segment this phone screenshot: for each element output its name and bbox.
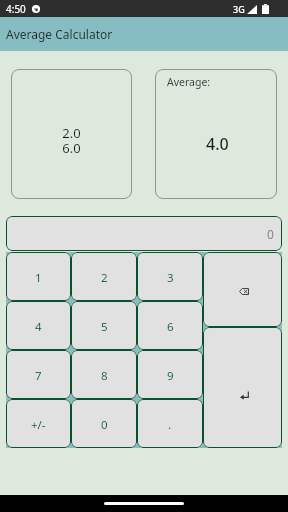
button[interactable]: 2 — [71, 252, 137, 301]
button[interactable]: 4 — [6, 301, 71, 350]
staticText: 6 — [167, 319, 174, 335]
staticText: 9 — [167, 368, 174, 384]
staticText: 2.0 6.0 — [62, 124, 81, 157]
button[interactable]: 6 — [137, 301, 203, 350]
button[interactable]: 3 — [137, 252, 203, 301]
button[interactable]: 7 — [6, 350, 71, 399]
staticText: 4 — [35, 319, 42, 335]
button[interactable]: . — [137, 399, 203, 448]
staticText: 1 — [35, 270, 42, 286]
staticText: Average Calculator — [6, 26, 113, 42]
button[interactable]: Backspace — [203, 252, 282, 327]
staticText: 4.0 — [206, 133, 229, 155]
button[interactable]: 9 — [137, 350, 203, 399]
staticText: +/- — [31, 417, 46, 433]
staticText: 0 — [267, 226, 274, 242]
button[interactable]: Enter — [203, 327, 282, 448]
button[interactable]: 5 — [71, 301, 137, 350]
button[interactable]: 2.0 6.0 — [11, 69, 132, 199]
button[interactable]: Average: — [155, 69, 277, 199]
staticText: 4:50 — [6, 2, 26, 16]
button[interactable]: 8 — [71, 350, 137, 399]
staticText: 0 — [101, 417, 108, 433]
staticText: 8 — [101, 368, 108, 384]
button[interactable]: +/- — [6, 399, 71, 448]
staticText: . — [168, 417, 172, 433]
staticText: 2 — [101, 270, 108, 286]
button[interactable]: 1 — [6, 252, 71, 301]
staticText: 5 — [101, 319, 108, 335]
staticText: Average: — [167, 75, 211, 89]
staticText: 3 — [167, 270, 174, 286]
staticText: 3G — [233, 3, 245, 15]
button[interactable]: 0 — [71, 399, 137, 448]
staticText: 7 — [35, 368, 42, 384]
button[interactable]: 0 — [6, 216, 282, 251]
